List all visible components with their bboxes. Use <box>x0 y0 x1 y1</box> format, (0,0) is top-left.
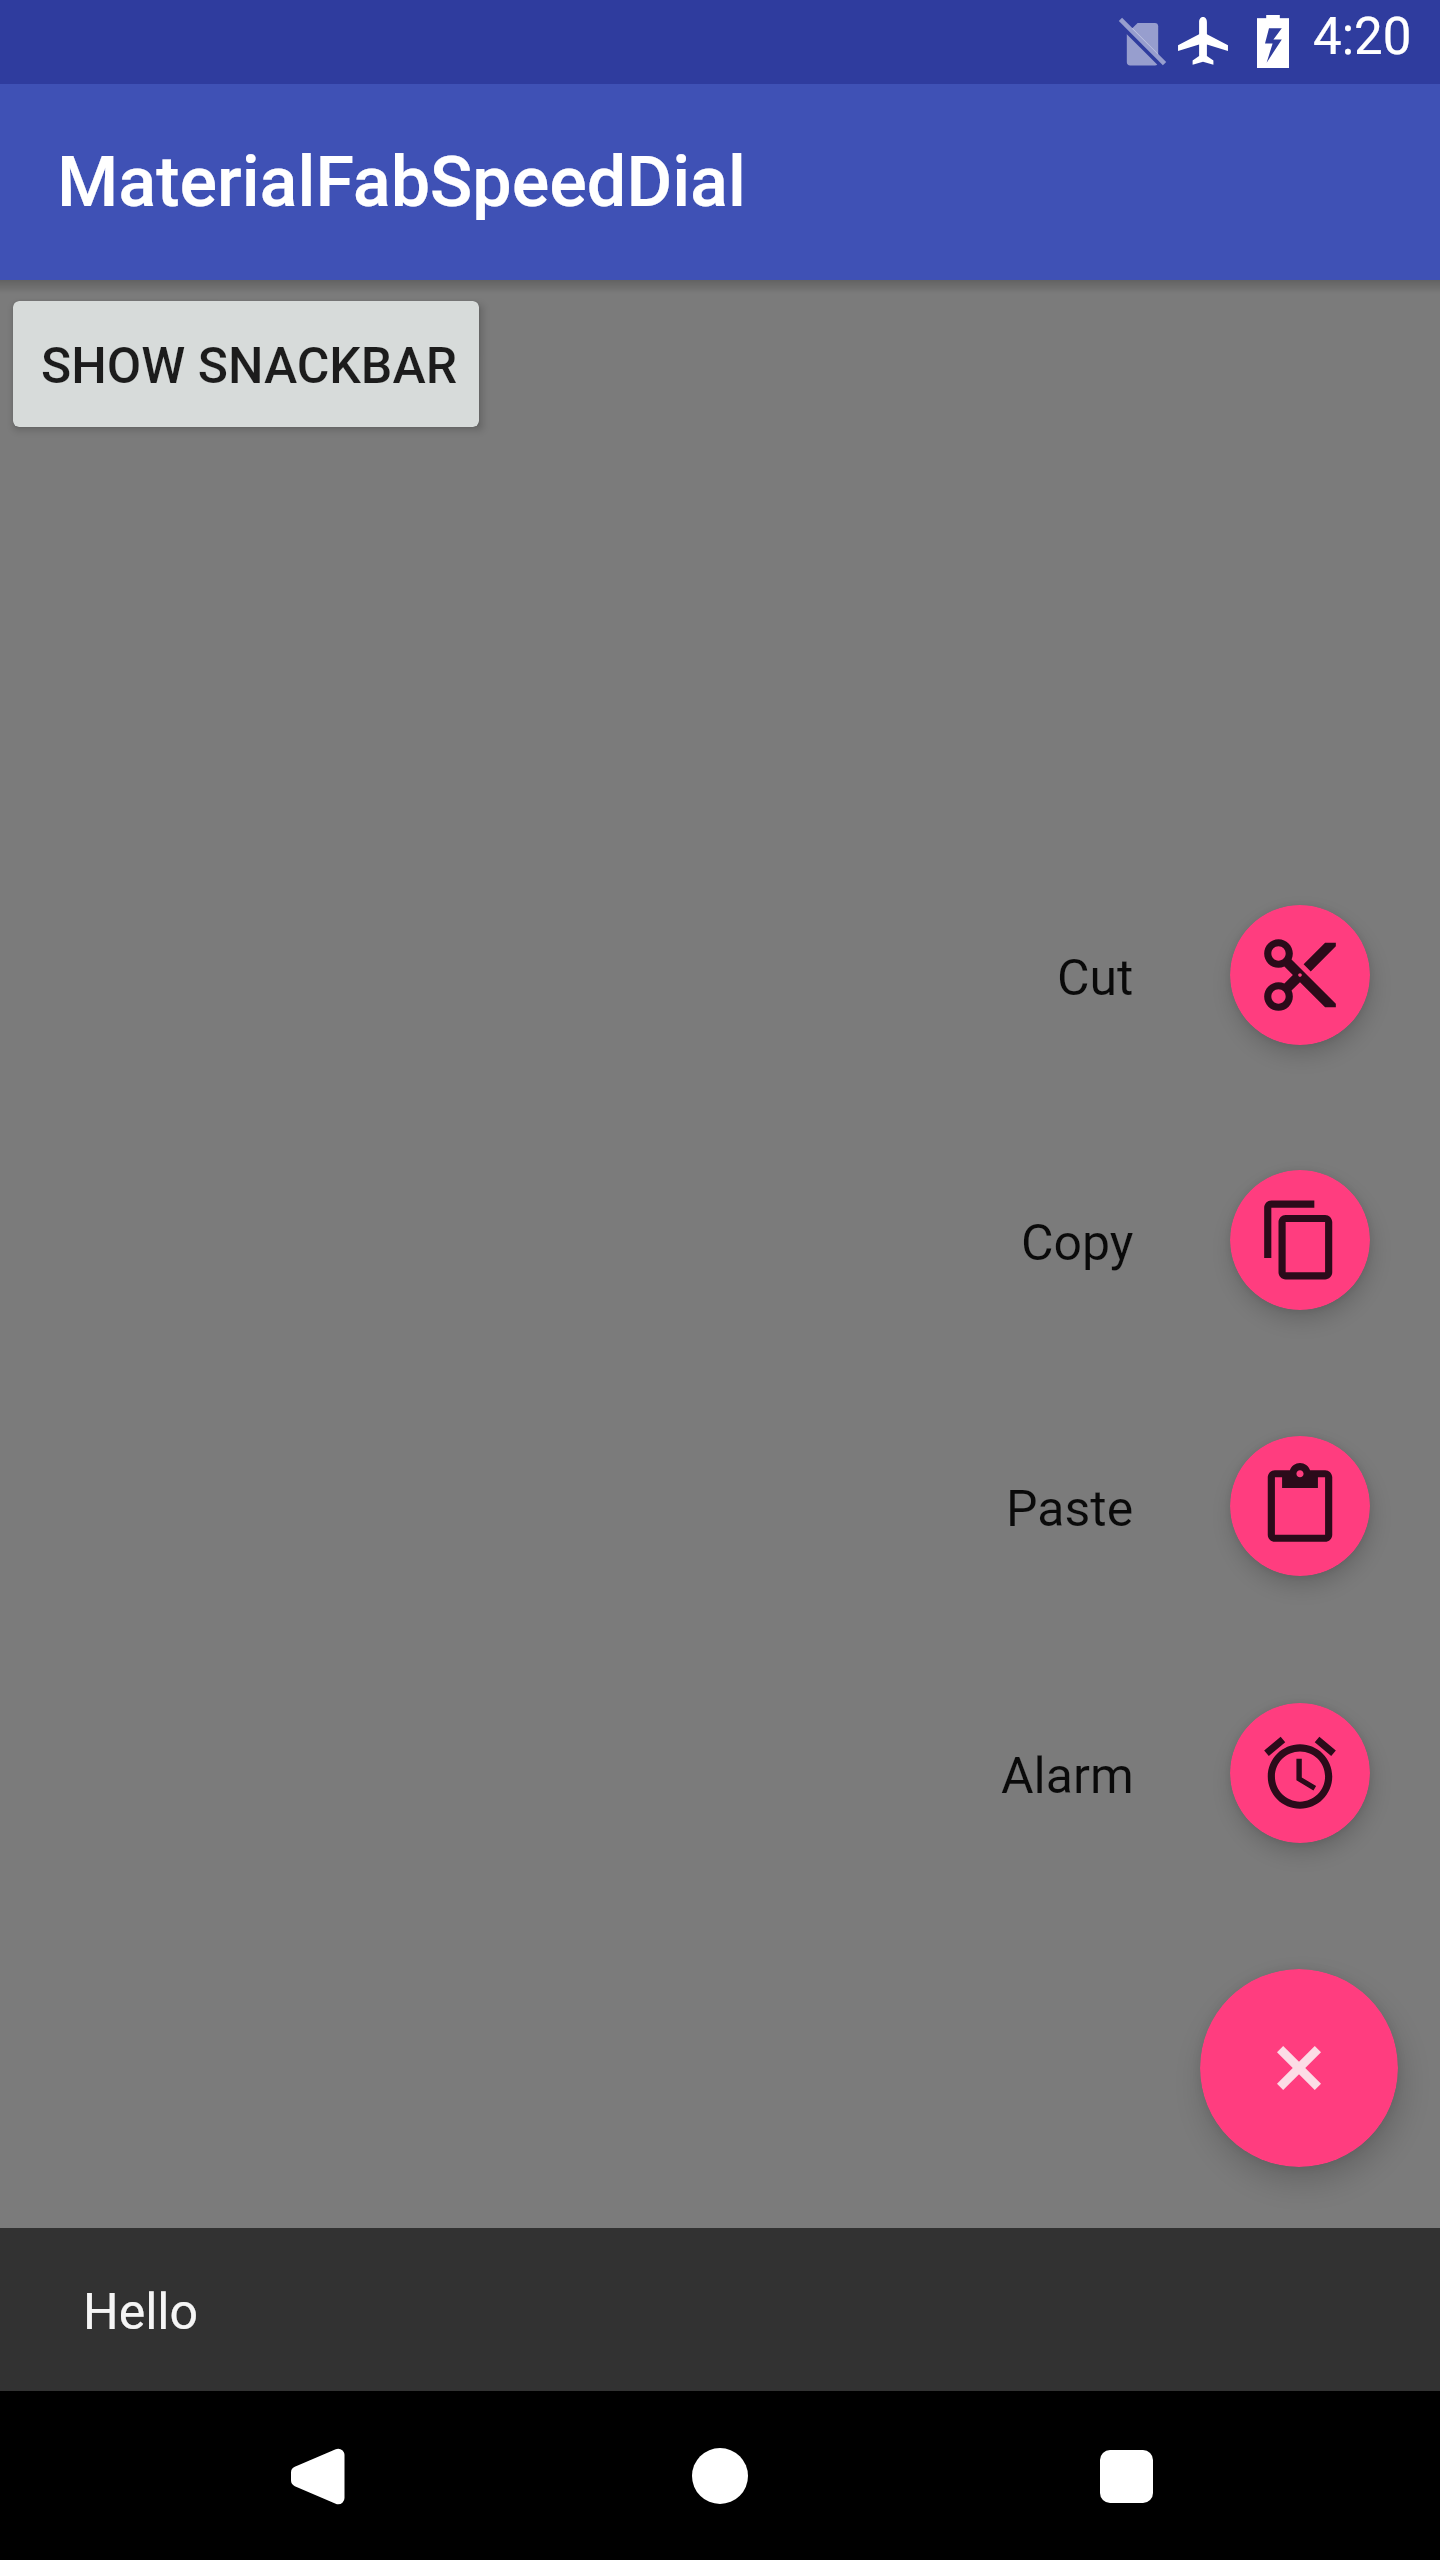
button[interactable]: Back <box>236 2421 396 2531</box>
button[interactable]: Copy <box>1230 1170 1370 1310</box>
staticText: Alarm <box>1001 1747 1134 1806</box>
button[interactable]: SHOW SNACKBAR <box>13 301 479 427</box>
button[interactable]: Hello <box>0 2228 1440 2391</box>
staticText: Paste <box>1006 1480 1134 1539</box>
staticText: Cut <box>1057 949 1134 1008</box>
button[interactable]: Paste <box>1230 1436 1370 1576</box>
button[interactable]: Recent apps <box>1046 2421 1206 2531</box>
staticText: SHOW SNACKBAR <box>41 337 457 396</box>
button[interactable]: Cut <box>1230 905 1370 1045</box>
staticText: Copy <box>1021 1214 1134 1273</box>
staticText: Hello <box>83 2283 199 2342</box>
staticText: 4:20 <box>1313 7 1412 67</box>
button[interactable]: Home <box>640 2421 800 2531</box>
button[interactable]: Alarm <box>1230 1703 1370 1843</box>
button[interactable]: Close speed dial <box>1200 1969 1398 2167</box>
staticText: MaterialFabSpeedDial <box>57 141 746 223</box>
